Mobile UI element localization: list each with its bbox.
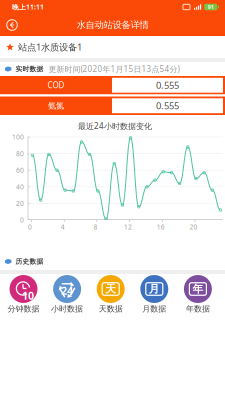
staticText: 分钟数据	[7, 304, 39, 314]
button[interactable]: 24	[45, 275, 89, 314]
staticText: 91	[208, 3, 214, 11]
staticText: 最近24小时数据变化	[78, 121, 152, 131]
staticText: 月数据	[142, 304, 166, 314]
staticText: 4	[61, 223, 65, 231]
staticText: 24	[61, 283, 73, 298]
staticText: 40	[16, 182, 24, 191]
button[interactable]: 月	[132, 275, 176, 314]
staticText: 100	[12, 133, 24, 141]
staticText: 0	[20, 216, 24, 224]
button[interactable]: 10	[2, 275, 45, 314]
staticText: 氨氮	[48, 101, 64, 111]
staticText: 0	[28, 223, 32, 231]
staticText: 实时数据	[15, 65, 43, 73]
staticText: 更新时间(2020年1月15日13点54分)	[48, 64, 179, 74]
staticText: 16	[157, 223, 165, 231]
staticText: 20	[16, 199, 24, 208]
staticText: 10	[22, 288, 34, 303]
staticText: 0.555	[156, 100, 179, 112]
staticText: COD	[47, 80, 64, 90]
staticText: 小时数据	[51, 304, 83, 314]
button[interactable]: 年	[176, 275, 220, 314]
staticText: 8	[93, 223, 97, 231]
staticText: 水自动站设备详情	[76, 19, 148, 31]
staticText: 站点1水质设备1	[18, 41, 82, 53]
staticText: 12	[124, 223, 132, 231]
staticText: 天数据	[99, 304, 123, 314]
staticText: 晚上11:11	[12, 3, 44, 11]
staticText: 60	[16, 166, 24, 175]
button[interactable]: 站点1水质设备1	[0, 36, 225, 58]
staticText: 20	[189, 223, 197, 231]
staticText: 0.555	[156, 79, 179, 91]
staticText: 年	[192, 282, 203, 295]
button[interactable]: 天	[89, 275, 132, 314]
staticText: 80	[16, 149, 24, 158]
staticText: 年数据	[186, 304, 210, 314]
button[interactable]: 返回	[0, 14, 24, 36]
staticText: 月	[149, 282, 160, 295]
staticText: 天	[105, 282, 116, 295]
staticText: 历史数据	[15, 257, 43, 266]
